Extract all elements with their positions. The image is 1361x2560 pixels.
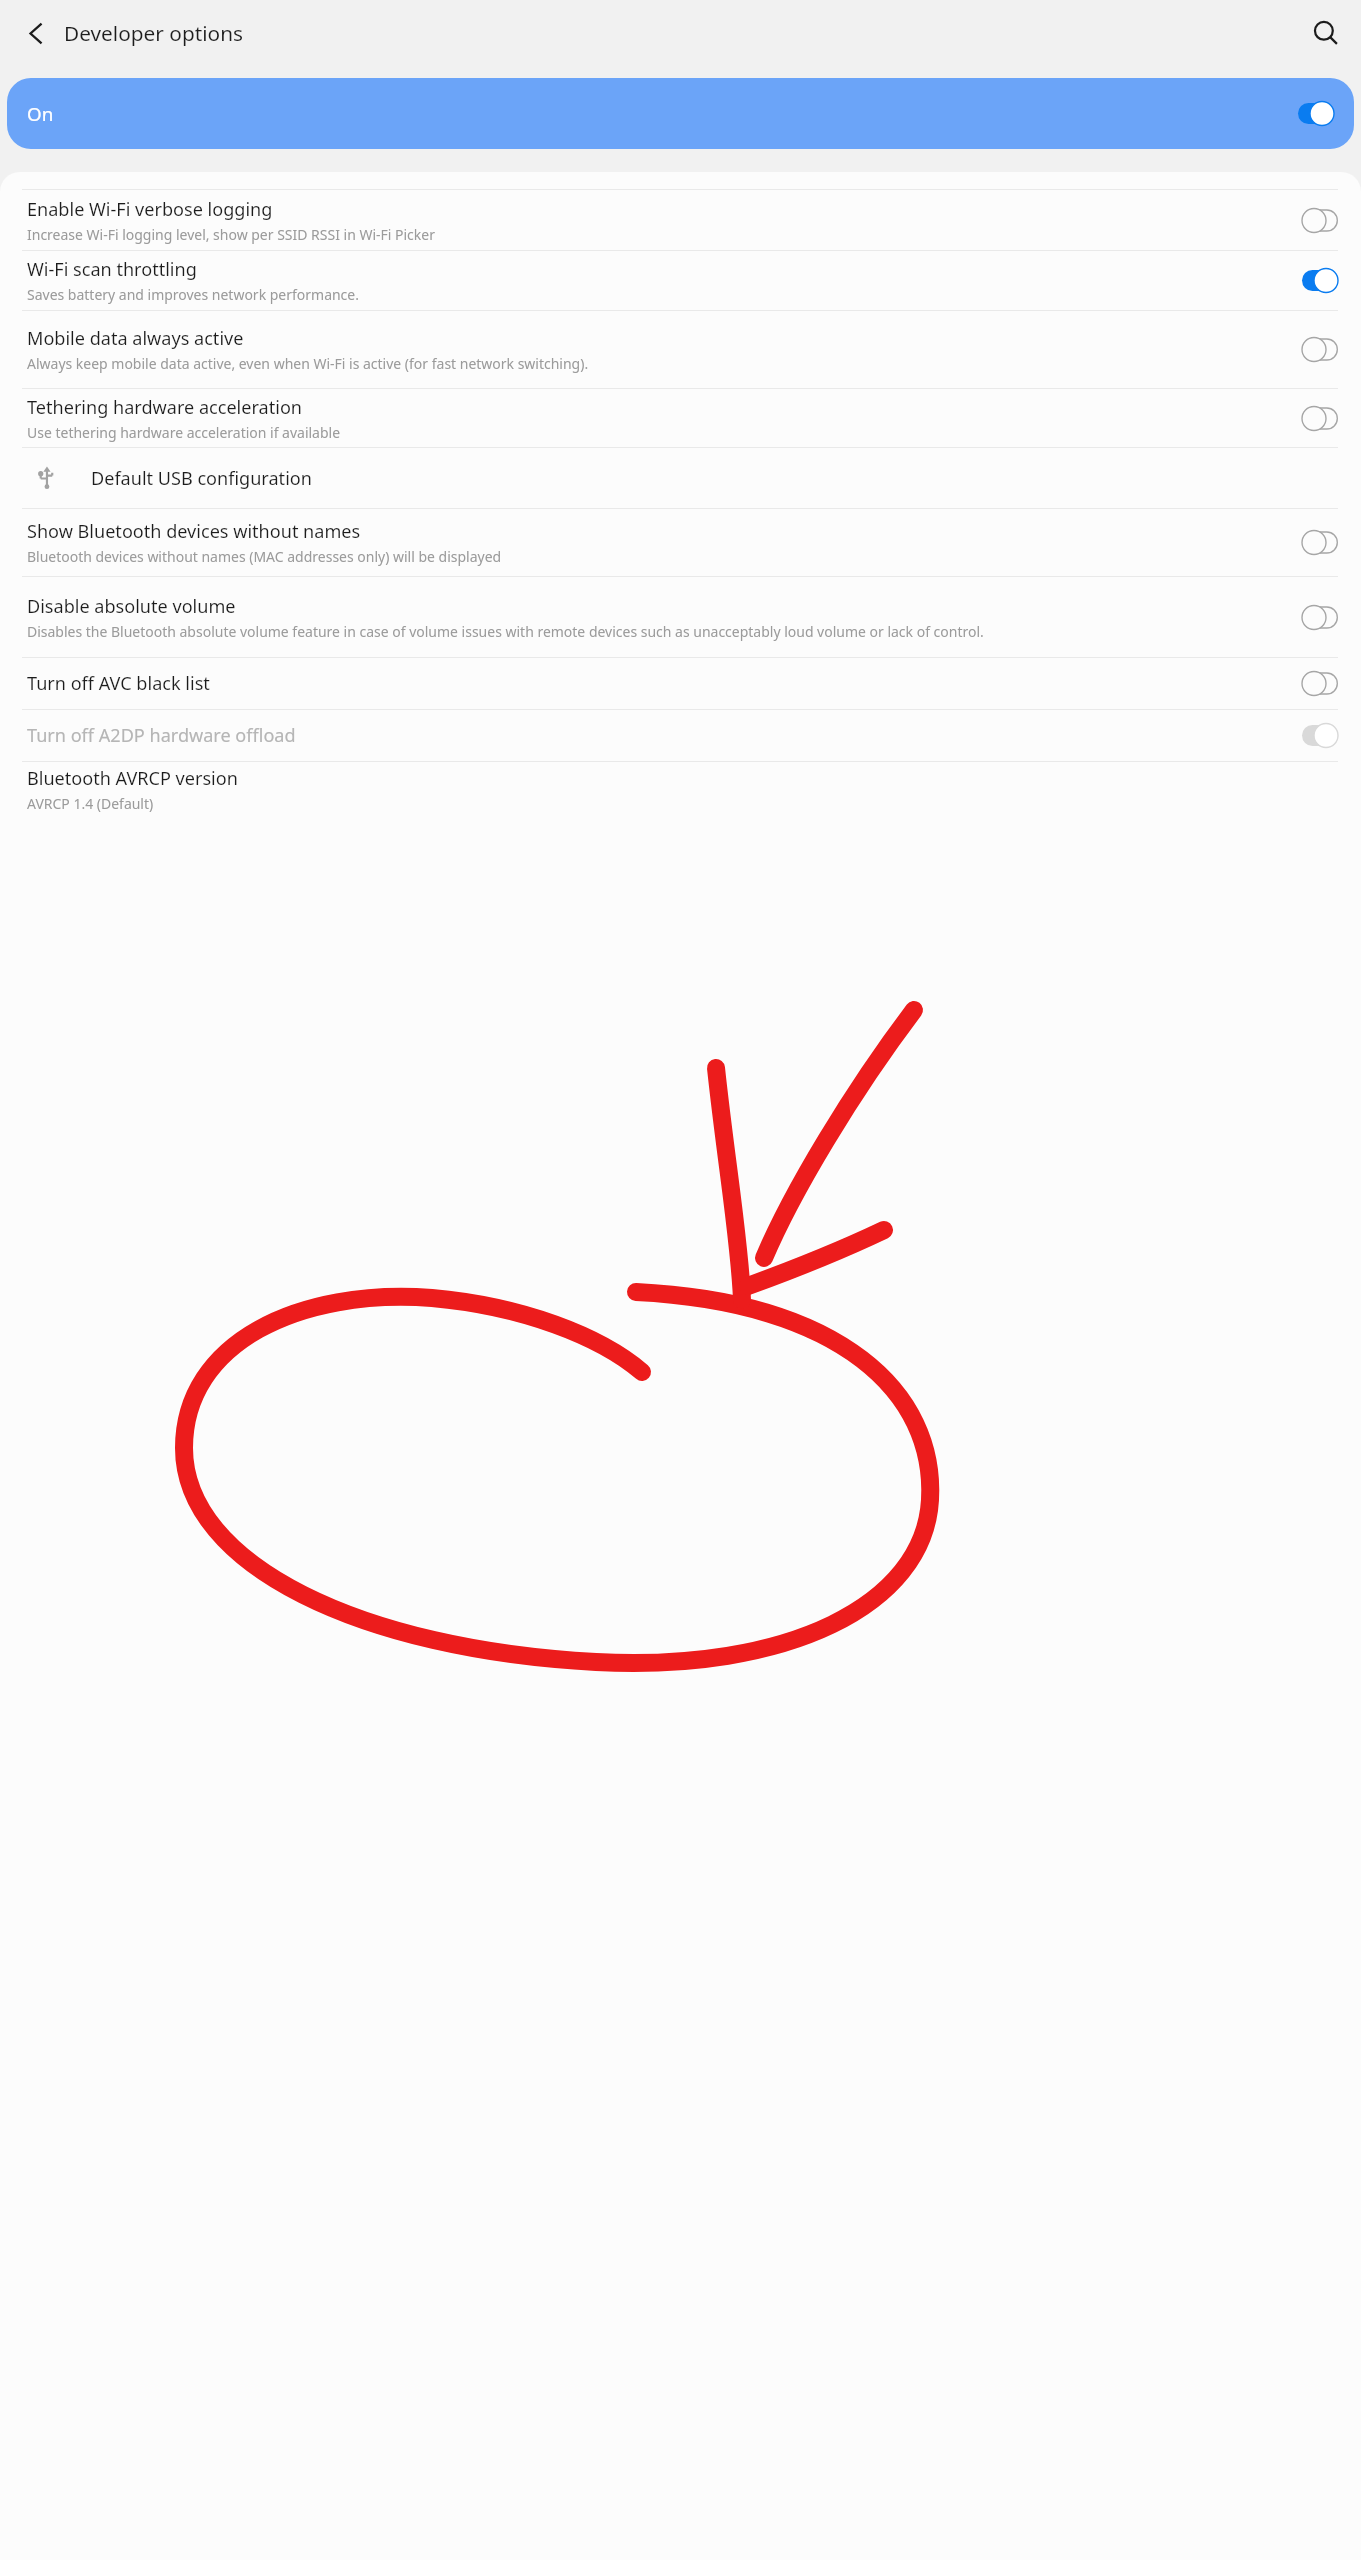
button[interactable]: Turn off A2DP hardware offload	[0, 710, 1361, 761]
staticText: On	[27, 101, 54, 127]
button[interactable]: Disable absolute volume	[1302, 605, 1338, 630]
button[interactable]: Back	[14, 11, 58, 55]
staticText: Show Bluetooth devices without names	[27, 519, 361, 544]
button[interactable]: Show Bluetooth devices without names	[0, 509, 1361, 576]
staticText: Wi-Fi scan throttling	[27, 257, 197, 282]
button[interactable]: Tethering hardware acceleration	[1302, 406, 1338, 431]
button[interactable]: Wi-Fi scan throttling	[0, 251, 1361, 310]
staticText: Bluetooth AVRCP version	[27, 766, 238, 791]
staticText: Tethering hardware acceleration	[27, 395, 302, 420]
button[interactable]: Search	[1303, 11, 1347, 55]
staticText: Saves battery and improves network perfo…	[27, 285, 359, 304]
staticText: Turn off A2DP hardware offload	[27, 723, 296, 748]
staticText: Developer options	[64, 19, 244, 47]
staticText: Disable absolute volume	[27, 594, 236, 619]
staticText: Turn off AVC black list	[27, 671, 210, 696]
button[interactable]: Turn off AVC black list	[0, 658, 1361, 709]
staticText: Increase Wi-Fi logging level, show per S…	[27, 225, 435, 244]
staticText: Always keep mobile data active, even whe…	[27, 354, 589, 373]
button[interactable]: Wi-Fi scan throttling	[1302, 268, 1338, 293]
button[interactable]: On	[7, 78, 1354, 149]
staticText: Disables the Bluetooth absolute volume f…	[27, 622, 984, 641]
staticText: Mobile data always active	[27, 326, 244, 351]
button[interactable]: Disable absolute volume	[0, 577, 1361, 657]
button[interactable]: Show Bluetooth devices without names	[1302, 530, 1338, 555]
staticText: Enable Wi-Fi verbose logging	[27, 197, 273, 222]
button[interactable]: Enable Wi-Fi verbose logging	[0, 190, 1361, 250]
staticText: Bluetooth devices without names (MAC add…	[27, 547, 502, 566]
button[interactable]: Turn off A2DP hardware offload	[1302, 723, 1338, 748]
button[interactable]: Bluetooth AVRCP version	[0, 762, 1361, 817]
button[interactable]: Enable Wi-Fi verbose logging	[1302, 208, 1338, 233]
staticText: AVRCP 1.4 (Default)	[27, 794, 154, 813]
button[interactable]: Mobile data always active	[0, 311, 1361, 388]
button[interactable]: Mobile data always active	[1302, 337, 1338, 362]
button[interactable]: Tethering hardware acceleration	[0, 389, 1361, 447]
staticText: Default USB configuration	[91, 466, 312, 491]
button[interactable]: Default USB configuration	[0, 448, 1361, 508]
staticText: Use tethering hardware acceleration if a…	[27, 423, 341, 442]
button[interactable]: Turn off AVC black list	[1302, 671, 1338, 696]
